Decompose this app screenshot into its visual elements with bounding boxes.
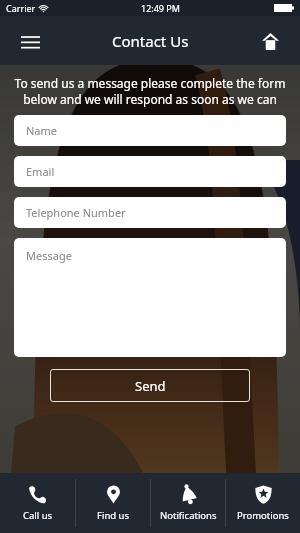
button[interactable]: Email bbox=[14, 156, 286, 187]
staticText: Find us bbox=[97, 509, 129, 522]
staticText: Email bbox=[26, 164, 55, 179]
button[interactable]: Home bbox=[252, 23, 288, 59]
staticText: To send us a message please complete the… bbox=[14, 75, 286, 107]
button[interactable]: Telephone Number bbox=[14, 197, 286, 228]
staticText: Send bbox=[135, 377, 166, 395]
button[interactable]: Send bbox=[50, 369, 250, 402]
button[interactable]: Notifications bbox=[151, 473, 225, 533]
button[interactable]: Promotions bbox=[226, 473, 300, 533]
button[interactable]: Menu bbox=[12, 23, 48, 59]
staticText: Message bbox=[26, 248, 72, 263]
staticText: Carrier bbox=[6, 2, 36, 14]
staticText: Promotions bbox=[237, 509, 289, 522]
button[interactable]: Name bbox=[14, 115, 286, 146]
staticText: Name bbox=[26, 123, 58, 138]
button[interactable]: Call us bbox=[0, 473, 75, 533]
staticText: Notifications bbox=[160, 509, 217, 522]
staticText: Call us bbox=[23, 509, 53, 522]
staticText: Telephone Number bbox=[26, 205, 126, 220]
button[interactable]: Find us bbox=[76, 473, 150, 533]
staticText: Contact Us bbox=[112, 31, 189, 51]
button[interactable]: Message bbox=[14, 238, 286, 357]
staticText: 12:49 PM bbox=[141, 2, 180, 14]
